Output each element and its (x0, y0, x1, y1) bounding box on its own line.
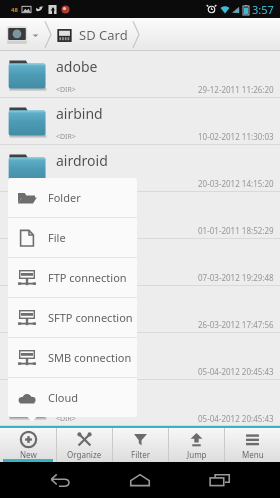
staticText: data (56, 386, 86, 405)
staticText: 10-02-2012 11:30:03 (198, 131, 274, 142)
staticText: airdroid (56, 151, 108, 170)
staticText: <DIR> (56, 226, 76, 236)
staticText: 29-12-2011 11:26:20 (198, 84, 274, 95)
button[interactable]: Recents (200, 462, 240, 498)
staticText: adobe (56, 57, 98, 76)
staticText: <DIR> (56, 320, 76, 330)
staticText: 20-03-2012 14:15:20 (198, 178, 274, 189)
staticText: airbind (56, 104, 103, 123)
staticText: <DIR> (56, 85, 76, 95)
staticText: 05-04-2012 20:45:43 (198, 366, 274, 377)
button[interactable]: Android (0, 239, 280, 286)
staticText: New (20, 449, 37, 460)
staticText: 48 (11, 6, 18, 14)
staticText: 01-01-2011 18:52:29 (198, 225, 274, 236)
button[interactable]: New (0, 428, 56, 462)
staticText: Folder (48, 190, 81, 205)
button[interactable]: airdroid (0, 145, 280, 192)
button[interactable]: Home (0, 21, 43, 49)
button[interactable]: SFTP connection (8, 298, 137, 337)
staticText: Cloud connection (48, 390, 137, 405)
button[interactable]: Organize (57, 428, 112, 462)
button[interactable]: adobe (0, 51, 280, 98)
button[interactable]: Filter (113, 428, 168, 462)
staticText: SFTP connection (48, 310, 133, 325)
button[interactable]: File (8, 218, 137, 257)
staticText: SMB connection (48, 350, 132, 365)
staticText: Organize (67, 449, 102, 460)
button[interactable]: SD Card (53, 26, 131, 44)
staticText: albumart (56, 198, 117, 217)
staticText: 05-04-2012 20:45:43 (198, 413, 274, 424)
staticText: <DIR> (56, 273, 76, 283)
button[interactable]: Jump (169, 428, 224, 462)
staticText: <DIR> (56, 132, 76, 142)
button[interactable]: SMB connection (8, 338, 137, 377)
button[interactable]: data (0, 380, 280, 426)
staticText: Menu (242, 449, 264, 460)
staticText: 07-03-2012 19:29:48 (198, 272, 274, 283)
staticText: bluetooth (56, 292, 121, 311)
button[interactable]: FTP connection (8, 258, 137, 297)
staticText: 3:57 (252, 2, 274, 17)
button[interactable]: Folder (8, 178, 137, 217)
staticText: Filter (131, 449, 150, 460)
staticText: 26-03-2012 17:47:56 (198, 319, 274, 330)
staticText: Android (56, 245, 109, 264)
staticText: cache (56, 339, 94, 358)
button[interactable]: Cloud connection (8, 378, 137, 417)
button[interactable]: bluetooth (0, 286, 280, 333)
staticText: FTP connection (48, 270, 127, 285)
staticText: SD Card (79, 26, 128, 44)
button[interactable]: airbind (0, 98, 280, 145)
button[interactable]: Back (40, 462, 80, 498)
button[interactable]: Menu (225, 428, 280, 462)
button[interactable]: cache (0, 333, 280, 380)
staticText: <DIR> (56, 414, 76, 424)
button[interactable]: albumart (0, 192, 280, 239)
staticText: Jump (187, 449, 207, 460)
staticText: File (48, 230, 66, 245)
button[interactable]: Home (120, 462, 160, 498)
